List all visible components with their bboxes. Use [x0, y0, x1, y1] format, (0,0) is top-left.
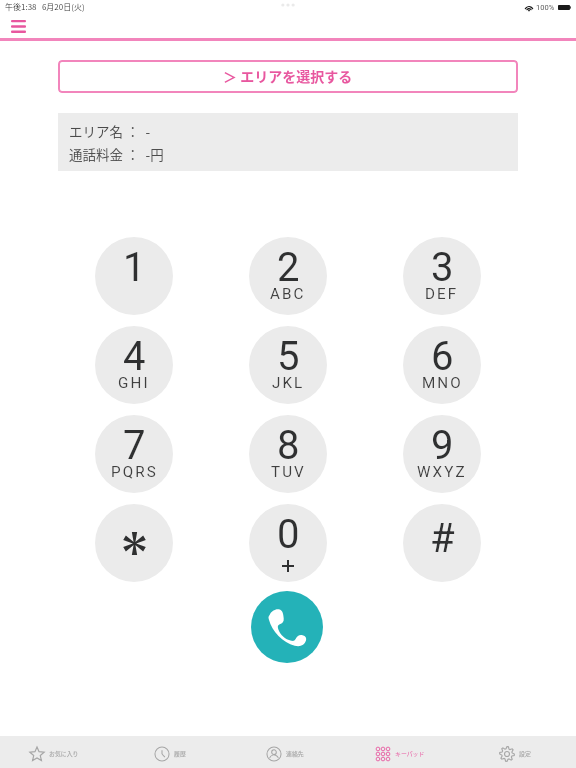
- staticText: 5: [277, 333, 300, 380]
- button[interactable]: 履歴: [116, 736, 231, 768]
- staticText: MNO: [422, 374, 463, 392]
- button[interactable]: お気に入り: [0, 736, 116, 768]
- staticText: PQRS: [111, 463, 158, 481]
- button[interactable]: 連絡先: [231, 736, 346, 768]
- button[interactable]: 5: [249, 326, 327, 404]
- button[interactable]: #: [403, 504, 481, 582]
- staticText: 8: [277, 422, 300, 469]
- staticText: 午後1:38 6月20日(火): [5, 1, 85, 13]
- button[interactable]: 9: [403, 415, 481, 493]
- staticText: ABC: [270, 285, 306, 303]
- staticText: キーパッド: [395, 749, 425, 758]
- staticText: 0: [277, 511, 300, 558]
- button[interactable]: 7: [95, 415, 173, 493]
- button[interactable]: 0: [249, 504, 327, 582]
- staticText: 履歴: [174, 749, 186, 758]
- staticText: 1: [123, 244, 146, 291]
- button[interactable]: Call: [251, 591, 323, 663]
- button[interactable]: キーパッド: [346, 736, 461, 768]
- staticText: 通話料金 ： -円: [69, 144, 164, 164]
- staticText: JKL: [272, 374, 305, 392]
- button[interactable]: 8: [249, 415, 327, 493]
- staticText: #: [430, 515, 455, 562]
- staticText: エリア名 ： -: [69, 121, 151, 141]
- staticText: 2: [277, 244, 300, 291]
- button[interactable]: ＞ エリアを選択する: [58, 60, 518, 93]
- staticText: ＞ エリアを選択する: [223, 66, 353, 86]
- staticText: 3: [431, 244, 454, 291]
- button[interactable]: Menu: [11, 17, 27, 33]
- button[interactable]: 2: [249, 237, 327, 315]
- button[interactable]: 4: [95, 326, 173, 404]
- staticText: DEF: [425, 285, 459, 303]
- staticText: 6: [431, 333, 454, 380]
- staticText: TUV: [271, 463, 306, 481]
- button[interactable]: [95, 504, 173, 582]
- button[interactable]: 設定: [461, 736, 576, 768]
- staticText: 9: [431, 422, 454, 469]
- staticText: 4: [123, 333, 146, 380]
- button[interactable]: 6: [403, 326, 481, 404]
- button[interactable]: 3: [403, 237, 481, 315]
- button[interactable]: 1: [95, 237, 173, 315]
- staticText: WXYZ: [417, 463, 467, 481]
- staticText: 7: [123, 422, 146, 469]
- staticText: 設定: [519, 749, 531, 758]
- staticText: 100%: [536, 3, 555, 12]
- staticText: GHI: [118, 374, 150, 392]
- staticText: お気に入り: [49, 749, 79, 758]
- staticText: 連絡先: [286, 749, 304, 758]
